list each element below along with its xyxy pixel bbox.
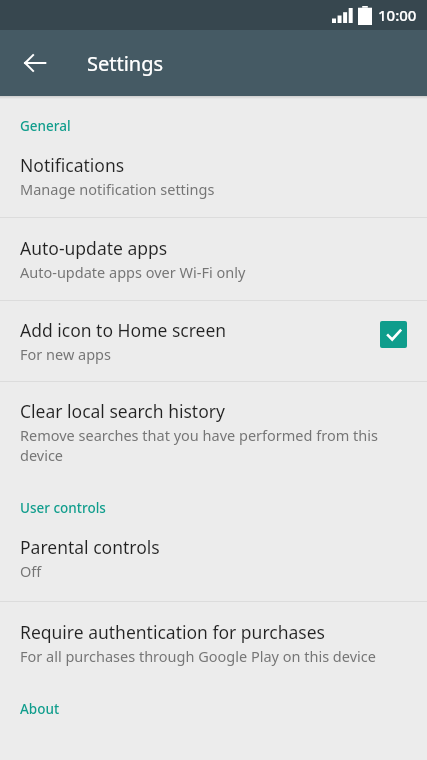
- staticText: Manage notification settings: [20, 179, 215, 199]
- staticText: Settings: [87, 50, 164, 77]
- staticText: Add icon to Home screen: [20, 318, 227, 342]
- button[interactable]: Back: [11, 39, 59, 87]
- staticText: Remove searches that you have performed …: [20, 425, 407, 465]
- staticText: 10:00: [378, 5, 417, 25]
- staticText: General: [20, 117, 71, 135]
- button[interactable]: Auto-update apps: [0, 218, 427, 300]
- staticText: Auto-update apps: [20, 236, 168, 260]
- button[interactable]: Clear local search history: [0, 382, 427, 483]
- button[interactable]: Notifications: [0, 149, 427, 217]
- staticText: About: [20, 700, 60, 718]
- staticText: Off: [20, 561, 42, 581]
- staticText: Require authentication for purchases: [20, 620, 325, 644]
- staticText: For new apps: [20, 344, 111, 364]
- button[interactable]: Parental controls: [0, 531, 427, 601]
- staticText: Parental controls: [20, 535, 160, 559]
- staticText: Clear local search history: [20, 399, 225, 423]
- staticText: Auto-update apps over Wi-Fi only: [20, 262, 246, 282]
- staticText: Notifications: [20, 153, 125, 177]
- staticText: User controls: [20, 499, 106, 517]
- staticText: For all purchases through Google Play on…: [20, 646, 376, 666]
- button[interactable]: Require authentication for purchases: [0, 602, 427, 684]
- other: Add icon to Home screen checkbox: [380, 321, 407, 348]
- button[interactable]: Add icon to Home screen: [0, 301, 427, 381]
